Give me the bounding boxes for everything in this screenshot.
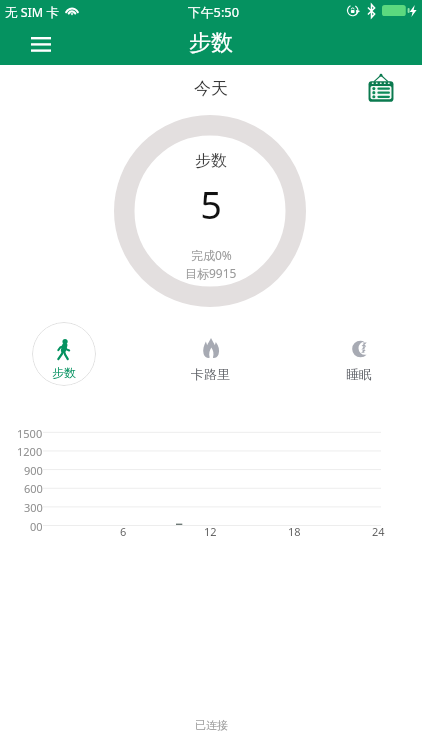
button[interactable]: 卡路里 xyxy=(180,332,241,384)
button[interactable]: 步数 xyxy=(32,322,96,386)
staticText: 900 xyxy=(24,463,43,478)
staticText: 下午5:50 xyxy=(188,3,239,20)
staticText: 睡眠 xyxy=(346,366,372,382)
staticText: 无 SIM 卡 xyxy=(5,4,59,21)
staticText: 600 xyxy=(24,481,43,496)
button[interactable]: Menu xyxy=(20,31,62,57)
staticText: 18 xyxy=(288,524,301,539)
staticText: 步数 xyxy=(195,151,227,171)
staticText: 步数 xyxy=(189,29,233,57)
staticText: 1200 xyxy=(17,444,43,459)
staticText: 1500 xyxy=(17,426,43,441)
staticText: 12 xyxy=(204,524,217,539)
staticText: 卡路里 xyxy=(191,366,230,382)
staticText: 今天 xyxy=(194,78,228,99)
staticText: 目标9915 xyxy=(185,265,237,281)
staticText: 已连接 xyxy=(195,718,228,732)
button[interactable]: 睡眠 xyxy=(329,332,388,384)
staticText: 6 xyxy=(120,524,127,539)
staticText: 完成0% xyxy=(191,247,232,263)
staticText: 00 xyxy=(30,519,43,534)
staticText: 24 xyxy=(372,524,385,539)
staticText: 5 xyxy=(200,178,222,230)
staticText: 300 xyxy=(24,500,43,515)
staticText: 步数 xyxy=(52,365,76,380)
button[interactable]: Calendar xyxy=(365,72,397,104)
